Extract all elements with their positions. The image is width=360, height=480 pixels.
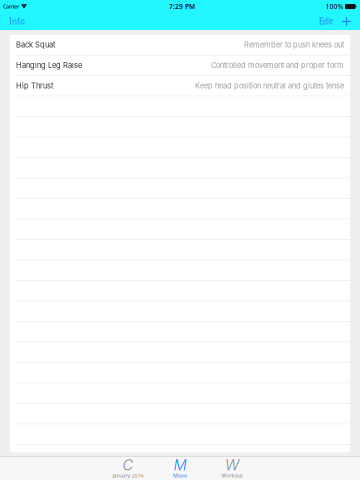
button[interactable]: C xyxy=(102,457,154,480)
staticText: C xyxy=(122,456,133,474)
staticText: January 2016 xyxy=(112,472,143,479)
staticText: 100% xyxy=(325,2,343,11)
staticText: Workout xyxy=(221,472,242,479)
button[interactable]: W xyxy=(206,457,258,480)
button[interactable]: M xyxy=(154,457,206,480)
staticText: Move xyxy=(173,472,187,479)
staticText: Edit xyxy=(319,16,333,27)
button[interactable]: Hip Thrust xyxy=(10,76,350,96)
button[interactable]: Add xyxy=(337,14,356,29)
staticText: Info xyxy=(9,16,25,27)
staticText: Hip Thrust xyxy=(16,81,53,90)
staticText: 7:29 PM xyxy=(169,2,195,11)
staticText: Remember to push knees out xyxy=(244,40,344,49)
button[interactable]: Edit xyxy=(315,13,337,30)
button[interactable]: Hanging Leg Raise xyxy=(10,55,350,76)
staticText: Back Squat xyxy=(16,40,55,49)
staticText: Keep head position neutral and glutes te… xyxy=(195,81,344,90)
staticText: Hanging Leg Raise xyxy=(16,61,82,70)
staticText: Carrier xyxy=(3,3,19,10)
staticText: Controlled movement and proper form xyxy=(211,61,344,70)
staticText: W xyxy=(225,456,239,474)
staticText: M xyxy=(173,456,186,474)
button[interactable]: Back Squat xyxy=(10,35,350,55)
button[interactable]: Info xyxy=(4,14,30,29)
